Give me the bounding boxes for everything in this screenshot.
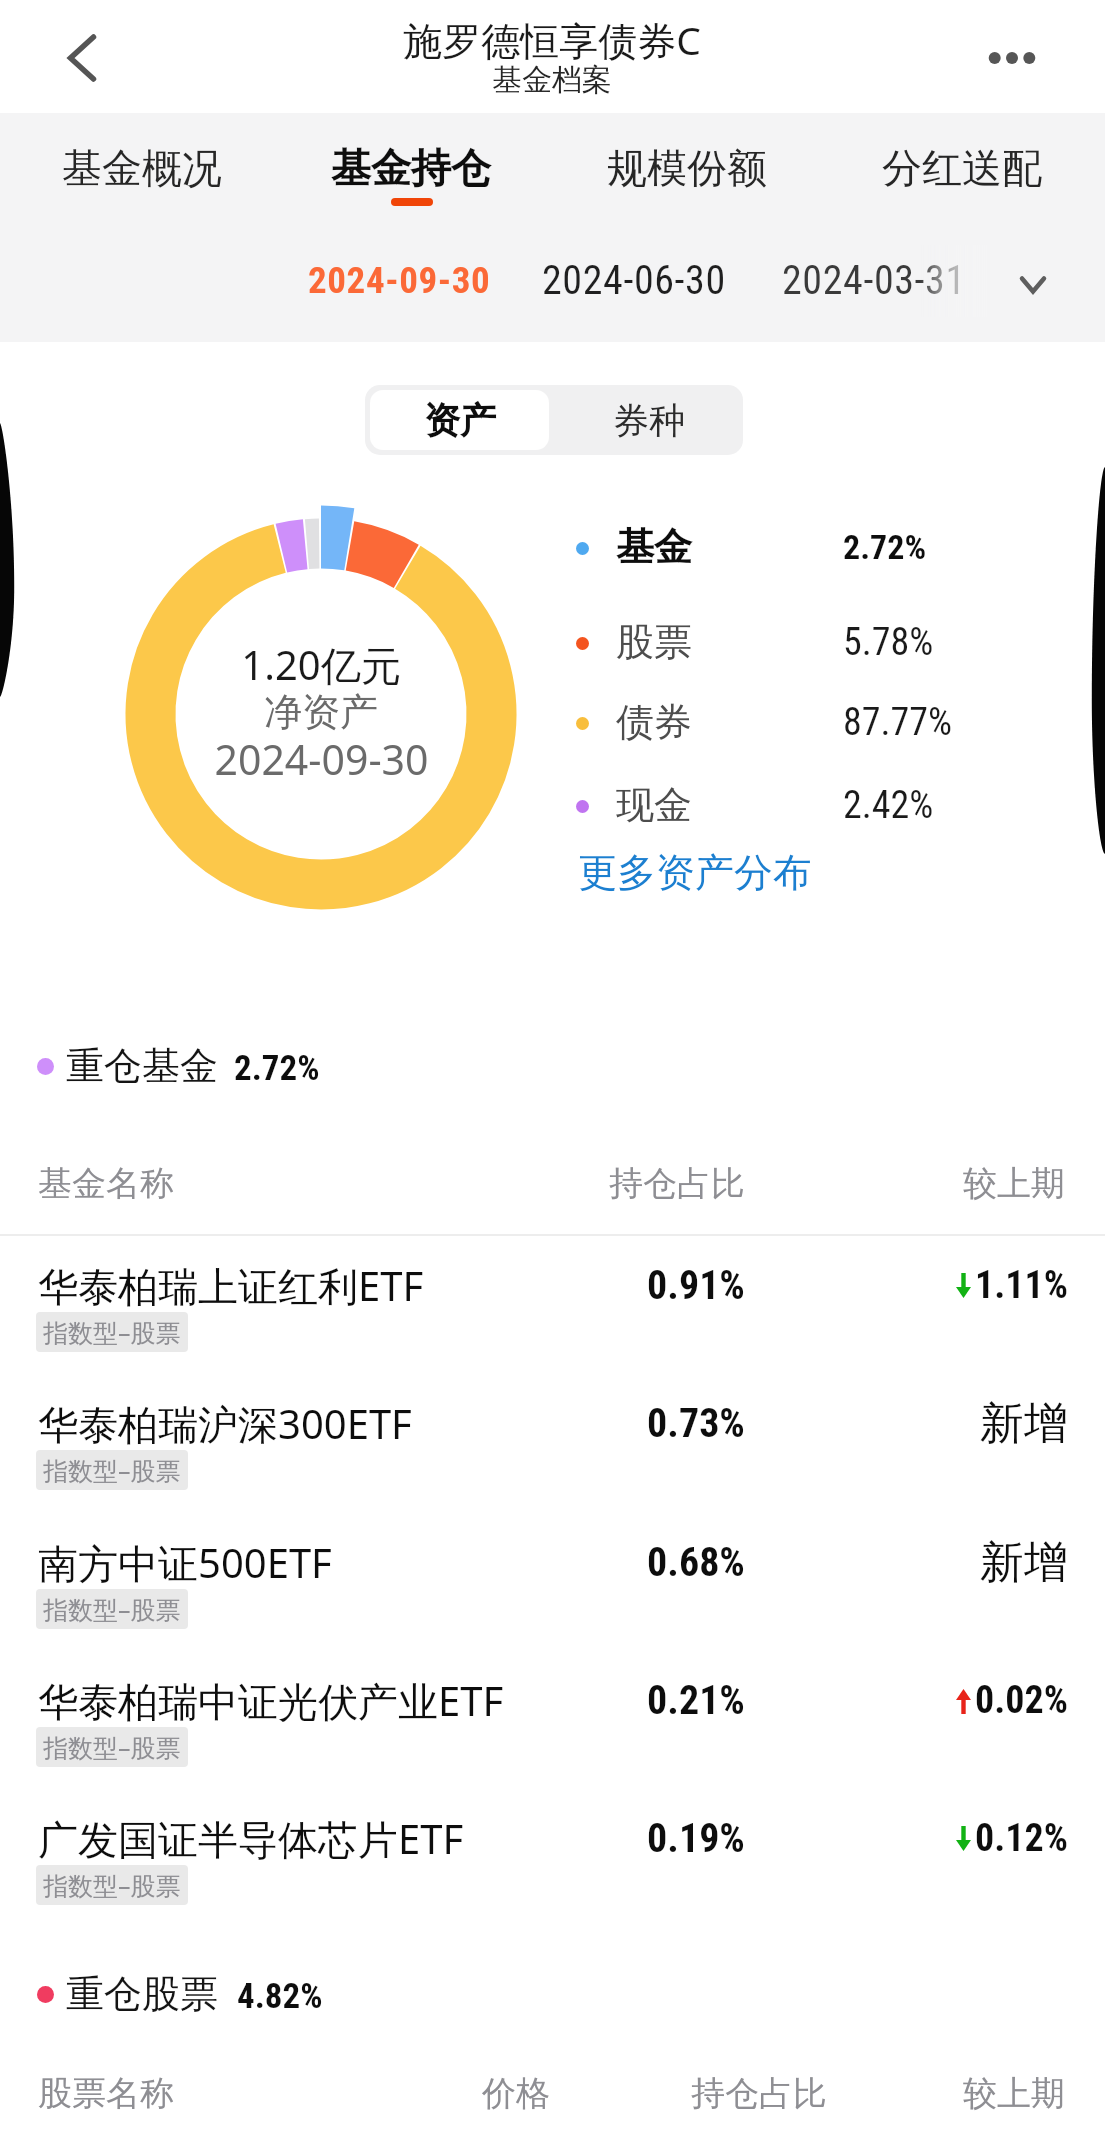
button[interactable]: 券种: [554, 385, 743, 455]
staticText: 新增: [980, 1396, 1068, 1451]
staticText: 指数型–股票: [43, 1453, 181, 1487]
staticText: 2.72%: [843, 527, 927, 567]
button[interactable]: Back: [42, 18, 122, 98]
staticText: 价格: [482, 2072, 550, 2115]
staticText: 南方中证500ETF: [38, 1535, 332, 1590]
staticText: 较上期: [963, 2072, 1065, 2115]
staticText: 2.72%: [234, 1048, 320, 1089]
staticText: 现金: [616, 781, 692, 829]
staticText: 1.20亿元: [241, 637, 401, 692]
staticText: 0.12%: [975, 1816, 1068, 1861]
staticText: 指数型–股票: [43, 1592, 181, 1626]
staticText: 基金概况: [62, 143, 222, 193]
staticText: 2024-06-30: [542, 257, 726, 304]
staticText: 券种: [613, 398, 685, 443]
button[interactable]: 2024-06-30: [530, 245, 738, 315]
staticText: 股票名称: [38, 2072, 174, 2115]
button[interactable]: 基金持仓: [273, 113, 549, 221]
staticText: 较上期: [963, 1162, 1065, 1205]
button[interactable]: 债券: [565, 684, 1065, 760]
button[interactable]: 2024-03-31: [768, 245, 976, 315]
button[interactable]: 规模份额: [549, 113, 825, 221]
staticText: 基金持仓: [331, 143, 491, 193]
staticText: 0.68%: [647, 1539, 745, 1586]
staticText: 重仓基金: [66, 1042, 218, 1090]
button[interactable]: 基金: [565, 509, 1065, 585]
button[interactable]: [0, 1233, 1105, 1363]
button[interactable]: 基金概况: [4, 113, 280, 221]
staticText: 广发国证半导体芯片ETF: [38, 1811, 464, 1866]
staticText: 更多资产分布: [578, 848, 812, 897]
staticText: 施罗德恒享债券C: [403, 13, 701, 66]
staticText: 4.82%: [237, 1976, 323, 2017]
staticText: 债券: [616, 698, 692, 746]
staticText: 2024-09-30: [308, 259, 491, 302]
staticText: 基金名称: [38, 1162, 174, 1205]
staticText: 资产: [424, 398, 496, 443]
button[interactable]: Expand quarter list: [1001, 253, 1065, 317]
staticText: 华泰柏瑞上证红利ETF: [38, 1258, 424, 1313]
staticText: 规模份额: [607, 143, 767, 193]
button[interactable]: 2024-09-30: [296, 245, 504, 315]
button[interactable]: [0, 1371, 1105, 1501]
staticText: 持仓占比: [691, 2072, 827, 2115]
staticText: 2.42%: [843, 783, 934, 828]
staticText: 分红送配: [882, 143, 1042, 193]
staticText: 指数型–股票: [43, 1730, 181, 1764]
staticText: 净资产: [264, 688, 378, 736]
staticText: 指数型–股票: [43, 1868, 181, 1902]
button[interactable]: 分红送配: [824, 113, 1100, 221]
staticText: 0.73%: [647, 1400, 745, 1447]
staticText: 0.91%: [647, 1262, 745, 1309]
button[interactable]: [0, 1648, 1105, 1778]
button[interactable]: 现金: [565, 767, 1065, 843]
staticText: 华泰柏瑞沪深300ETF: [38, 1396, 412, 1451]
button[interactable]: 更多资产分布: [565, 838, 865, 908]
button[interactable]: [0, 1786, 1105, 1916]
staticText: 基金: [616, 523, 692, 571]
staticText: 股票: [616, 618, 692, 666]
staticText: 指数型–股票: [43, 1315, 181, 1349]
staticText: 0.02%: [975, 1678, 1068, 1723]
staticText: 基金档案: [492, 61, 612, 99]
staticText: 2024-09-30: [214, 731, 429, 787]
staticText: 2024-03-31: [782, 257, 966, 304]
staticText: 1.11%: [975, 1263, 1068, 1308]
staticText: 5.78%: [843, 620, 934, 665]
staticText: 0.19%: [647, 1815, 745, 1862]
staticText: 持仓占比: [609, 1162, 745, 1205]
staticText: 华泰柏瑞中证光伏产业ETF: [38, 1673, 504, 1728]
button[interactable]: 股票: [565, 604, 1065, 680]
button[interactable]: More options: [972, 18, 1052, 98]
button[interactable]: [0, 1510, 1105, 1640]
staticText: 新增: [980, 1535, 1068, 1590]
staticText: 0.21%: [647, 1677, 745, 1724]
staticText: 87.77%: [843, 700, 953, 745]
staticText: 重仓股票: [66, 1970, 218, 2018]
button[interactable]: 资产: [370, 390, 549, 450]
button[interactable]: [36, 1957, 346, 2031]
button[interactable]: [36, 1029, 346, 1103]
